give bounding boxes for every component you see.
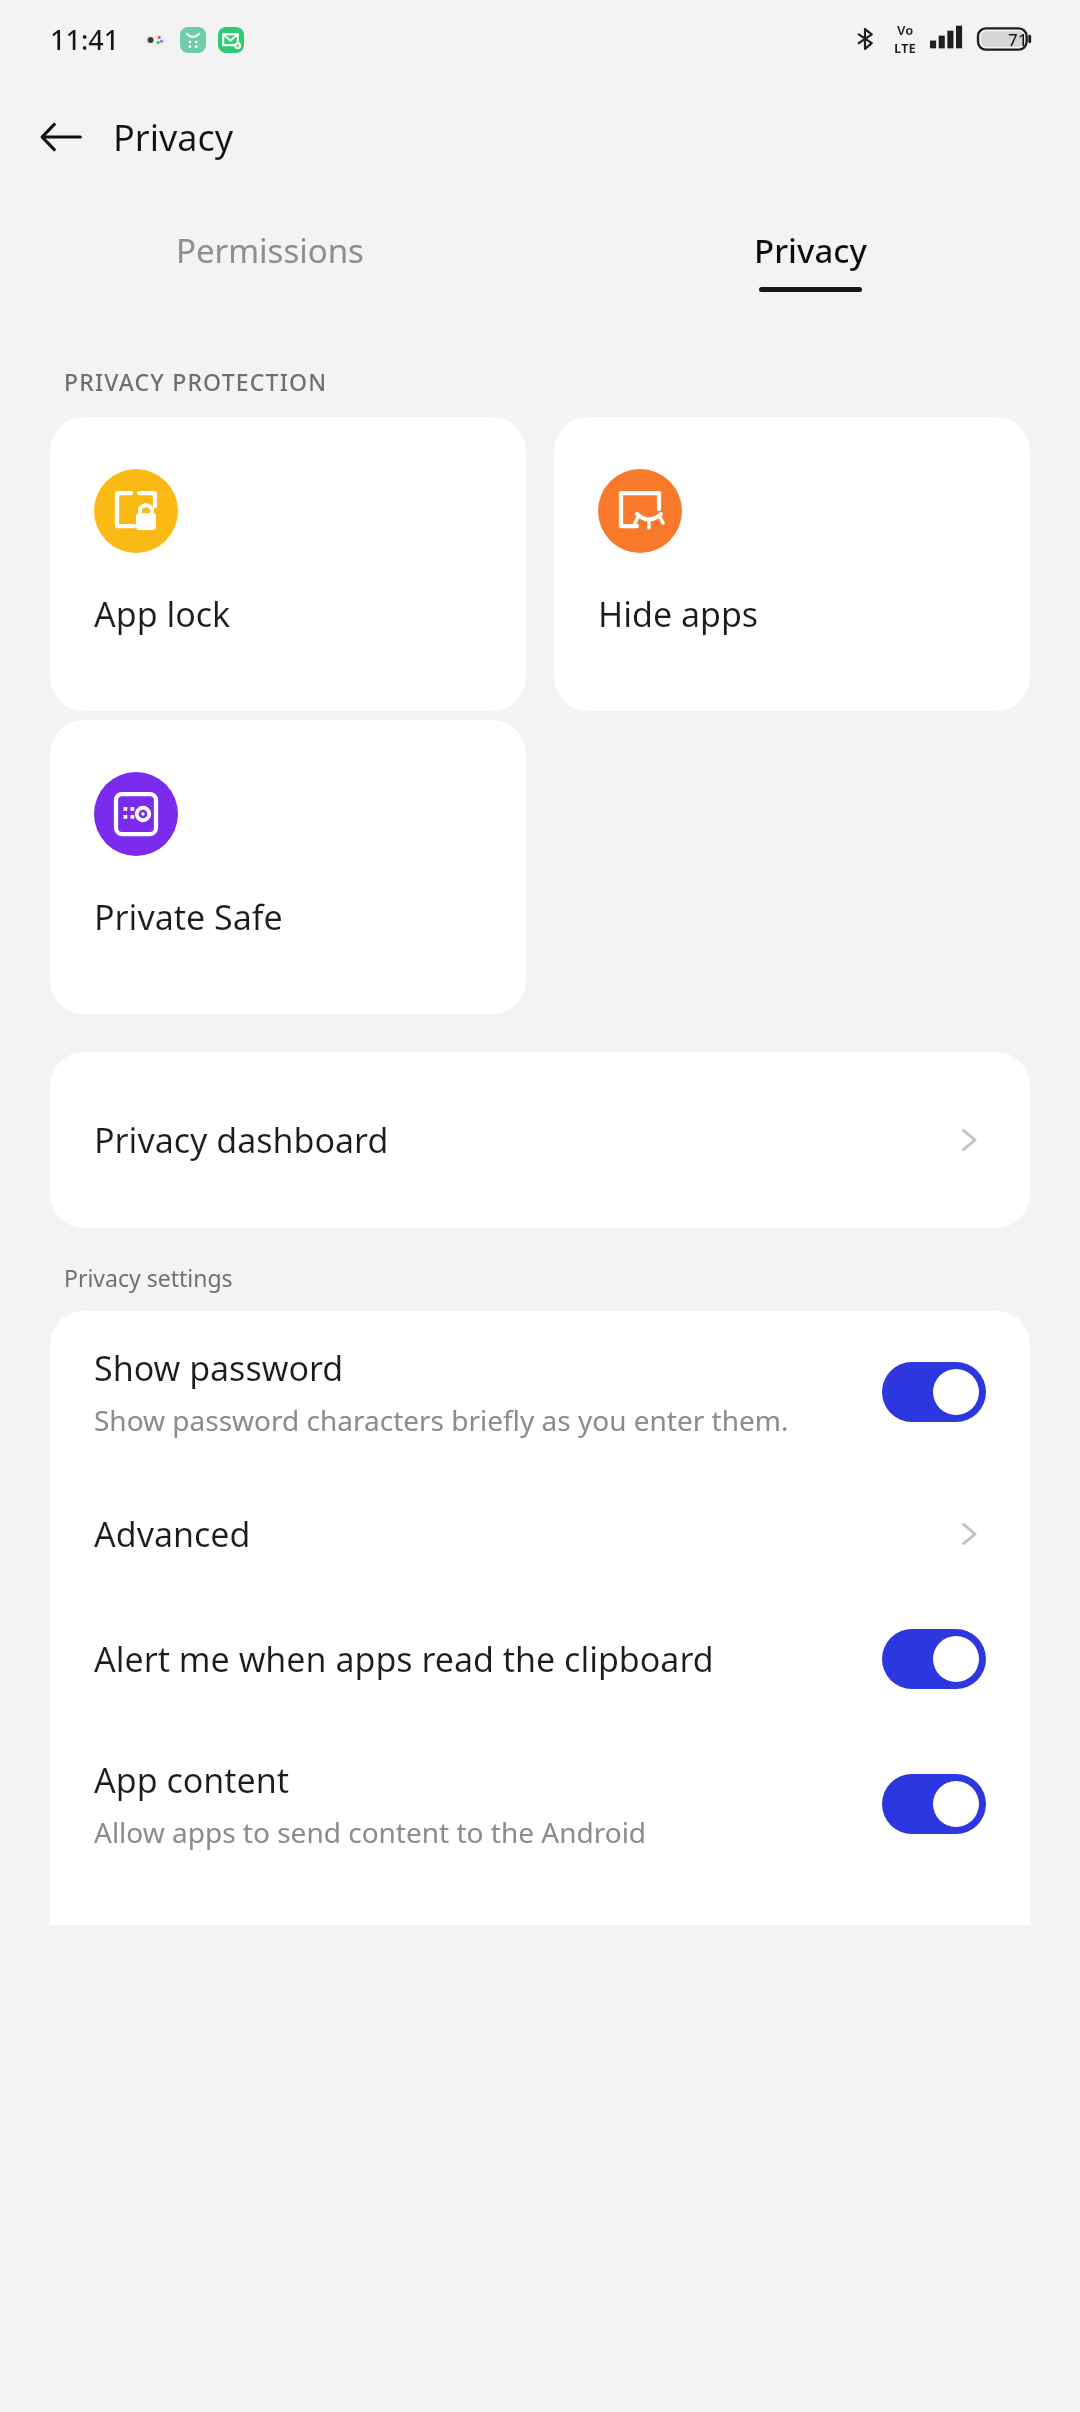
staticText: Privacy settings: [64, 1262, 233, 1293]
staticText: Allow apps to send content to the Androi…: [94, 1813, 647, 1851]
staticText: PRIVACY PROTECTION: [64, 366, 328, 397]
button[interactable]: Alert me when apps read the clipboard: [50, 1595, 1030, 1723]
button[interactable]: Privacy: [540, 196, 1080, 324]
button[interactable]: Permissions: [0, 196, 540, 324]
button[interactable]: Advanced: [50, 1473, 1030, 1595]
staticText: Hide apps: [598, 591, 759, 637]
staticText: Show password characters briefly as you …: [94, 1401, 789, 1439]
staticText: Privacy dashboard: [94, 1117, 389, 1163]
staticText: Vo: [897, 21, 914, 39]
button[interactable]: Privacy dashboard: [50, 1052, 1030, 1228]
button[interactable]: Hide apps: [554, 417, 1030, 711]
button[interactable]: Private Safe: [50, 720, 526, 1014]
staticText: Private Safe: [94, 894, 283, 940]
staticText: Advanced: [94, 1511, 251, 1557]
staticText: 71: [1008, 28, 1028, 51]
staticText: App lock: [94, 591, 231, 637]
button[interactable]: Show password: [50, 1311, 1030, 1473]
button[interactable]: Back: [24, 100, 98, 174]
staticText: Permissions: [176, 228, 364, 273]
staticText: Alert me when apps read the clipboard: [94, 1636, 714, 1682]
staticText: LTE: [894, 39, 916, 57]
staticText: Privacy: [754, 228, 867, 273]
staticText: Privacy: [113, 113, 234, 162]
staticText: 11:41: [50, 21, 120, 58]
staticText: App content: [94, 1757, 290, 1803]
staticText: Show password: [94, 1345, 344, 1391]
button[interactable]: App lock: [50, 417, 526, 711]
button[interactable]: App content: [50, 1723, 1030, 1885]
